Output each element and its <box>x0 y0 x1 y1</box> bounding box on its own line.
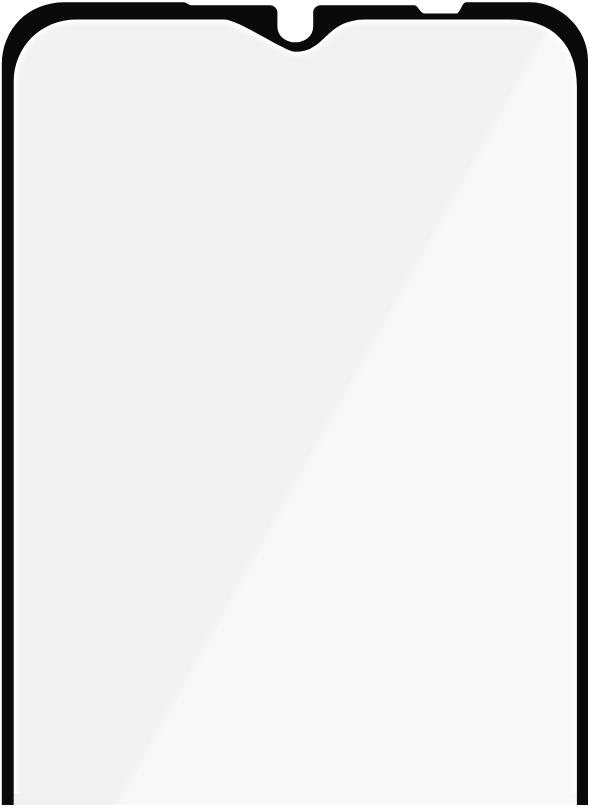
button[interactable]: Tempered glass screen protector <box>0 0 589 809</box>
